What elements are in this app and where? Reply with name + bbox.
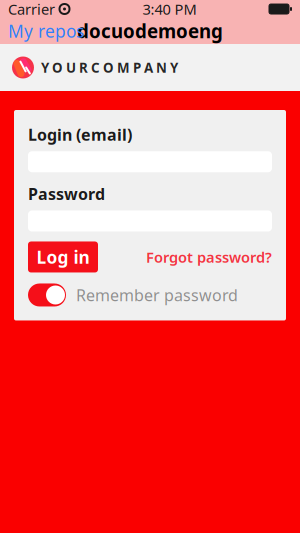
- staticText: My repos: [8, 19, 84, 42]
- staticText: Log in: [36, 245, 89, 268]
- button[interactable]: My repos: [0, 18, 92, 44]
- staticText: Forgot password?: [146, 247, 272, 267]
- staticText: Login (email): [28, 124, 132, 145]
- button[interactable]: Forgot password?: [146, 247, 272, 267]
- staticText: docuodemoeng: [77, 19, 223, 43]
- staticText: Carrier: [8, 0, 55, 19]
- button[interactable]: Remember password, on: [28, 283, 66, 306]
- staticText: Password: [28, 183, 105, 204]
- staticText: Remember password: [76, 284, 238, 306]
- staticText: Y O U R C O M P A N Y: [41, 59, 178, 76]
- staticText: 3:40 PM: [142, 0, 196, 19]
- button[interactable]: Log in: [28, 241, 98, 272]
